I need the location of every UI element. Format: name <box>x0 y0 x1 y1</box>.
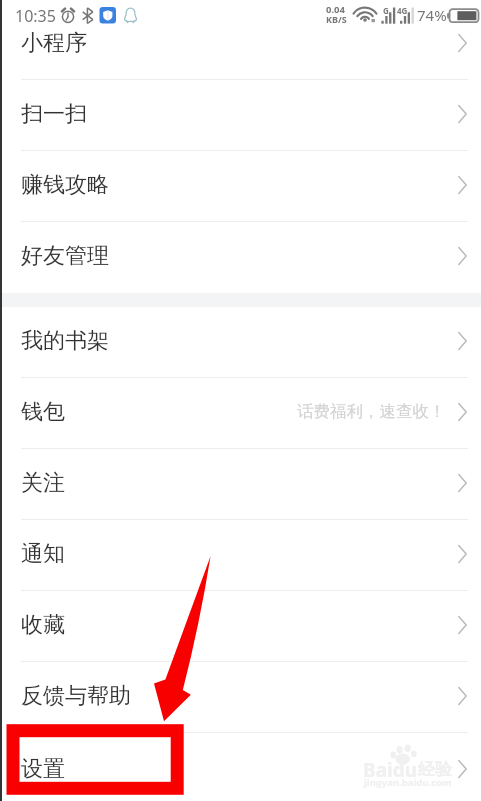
button[interactable]: 扫一扫 <box>0 80 481 151</box>
staticText: KB/S <box>326 13 347 25</box>
staticText: 10:35 <box>15 5 56 27</box>
button[interactable]: 通知 <box>0 520 481 591</box>
button[interactable]: 设置 <box>0 733 481 801</box>
staticText: 钱包 <box>21 398 65 426</box>
staticText: 经验 <box>418 759 452 780</box>
staticText: 赚钱攻略 <box>21 171 109 199</box>
button[interactable]: 好友管理 <box>0 222 481 293</box>
staticText: 小程序 <box>21 29 87 57</box>
staticText: 话费福利，速查收！ <box>297 401 446 422</box>
staticText: G <box>383 5 389 16</box>
button[interactable]: 赚钱攻略 <box>0 151 481 222</box>
button[interactable]: 小程序 <box>0 28 481 80</box>
staticText: 反馈与帮助 <box>21 682 131 710</box>
staticText: 74% <box>417 5 447 25</box>
staticText: 好友管理 <box>21 242 109 270</box>
staticText: 关注 <box>21 469 65 497</box>
staticText: jingyan.baidu.com <box>364 776 452 789</box>
staticText: 4G <box>397 5 408 16</box>
button[interactable]: 钱包 <box>0 378 481 449</box>
staticText: 扫一扫 <box>21 100 87 128</box>
button[interactable]: 我的书架 <box>0 307 481 378</box>
staticText: 设置 <box>21 755 65 783</box>
button[interactable]: 关注 <box>0 449 481 520</box>
button[interactable]: 收藏 <box>0 591 481 662</box>
button[interactable]: 反馈与帮助 <box>0 662 481 733</box>
staticText: Baidu <box>363 757 418 783</box>
staticText: 我的书架 <box>21 327 109 355</box>
staticText: 通知 <box>21 540 65 568</box>
staticText: 0.04 <box>326 3 345 16</box>
staticText: 收藏 <box>21 611 65 639</box>
